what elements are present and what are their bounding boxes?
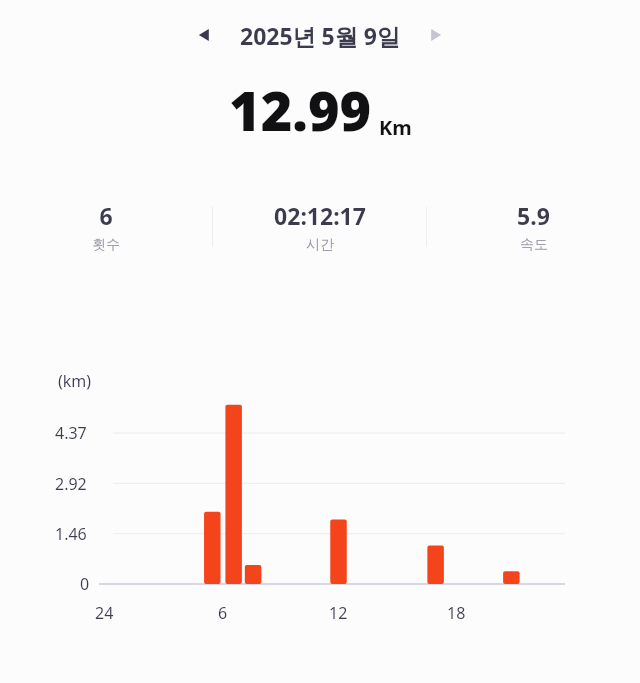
staticText: 횟수: [92, 236, 120, 254]
staticText: 6: [218, 602, 228, 624]
staticText: 5.9: [517, 200, 550, 231]
staticText: 시간: [306, 236, 334, 254]
button[interactable]: 02:12:17: [213, 198, 426, 256]
button[interactable]: Previous day: [182, 13, 226, 57]
staticText: 0: [80, 573, 90, 595]
button[interactable]: 6: [0, 198, 212, 256]
staticText: 24: [95, 602, 114, 624]
button[interactable]: 5.9: [427, 198, 640, 256]
staticText: 12: [329, 602, 348, 624]
staticText: 2.92: [55, 473, 87, 495]
staticText: (km): [58, 370, 92, 392]
staticText: 12.99: [229, 73, 372, 147]
staticText: 2025년 5월 9일: [240, 20, 400, 51]
staticText: 02:12:17: [274, 200, 366, 231]
staticText: 6: [99, 200, 113, 231]
staticText: Km: [379, 114, 412, 141]
button[interactable]: Next day: [414, 13, 458, 57]
staticText: 1.46: [55, 523, 87, 545]
staticText: 4.37: [55, 422, 87, 444]
staticText: 18: [447, 602, 466, 624]
staticText: 속도: [520, 236, 548, 254]
